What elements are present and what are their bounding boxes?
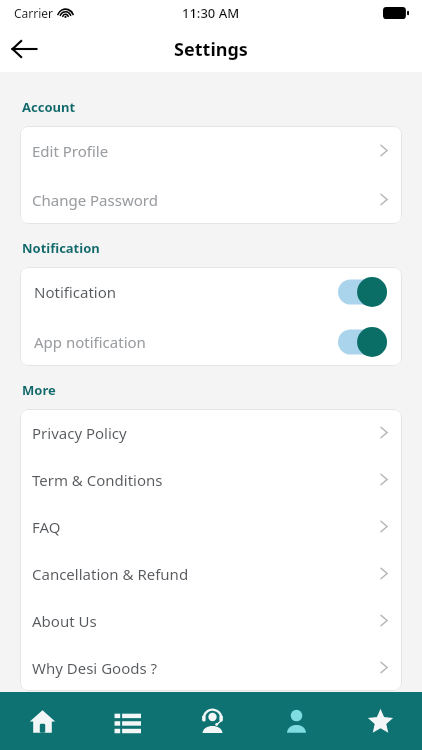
staticText: Notification [22,239,100,257]
button[interactable]: Categories [85,692,170,750]
staticText: Account [22,98,76,116]
staticText: Settings [174,37,248,62]
button[interactable]: About Us [20,597,402,644]
staticText: Change Password [32,190,380,210]
button[interactable]: Support [170,692,254,750]
button[interactable]: Home [0,692,85,750]
staticText: App notification [34,332,338,352]
button[interactable]: Profile [254,692,338,750]
staticText: Notification [34,282,338,302]
staticText: Term & Conditions [32,470,380,490]
button[interactable]: Change Password [20,175,402,224]
button[interactable]: Term & Conditions [20,456,402,503]
staticText: Edit Profile [32,141,380,161]
button[interactable]: App notification [20,317,402,366]
staticText: Why Desi Goods ? [32,658,380,678]
button[interactable]: Why Desi Goods ? [20,644,402,691]
staticText: 11:30 AM [182,4,240,22]
button[interactable]: Back [0,26,48,72]
button[interactable]: Notification [20,267,402,317]
staticText: FAQ [32,517,380,537]
button[interactable]: Edit Profile [20,126,402,175]
staticText: Cancellation & Refund [32,564,380,584]
button[interactable]: Cancellation & Refund [20,550,402,597]
staticText: About Us [32,611,380,631]
staticText: Privacy Policy [32,423,380,443]
button[interactable]: FAQ [20,503,402,550]
button[interactable]: Favorites [338,692,422,750]
button[interactable]: Privacy Policy [20,409,402,456]
staticText: Carrier [14,5,54,21]
staticText: More [22,381,56,399]
